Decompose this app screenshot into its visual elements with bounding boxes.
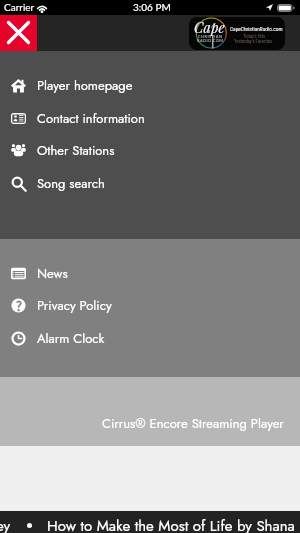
button[interactable]: Other Stations [0,134,300,166]
button[interactable]: Contact information [0,102,300,134]
button[interactable]: Alarm Clock [0,322,300,354]
staticText: 3:06 PM [133,1,171,13]
staticText: CHRISTIAN [198,34,223,39]
staticText: Song search [37,174,105,193]
button[interactable]: ? [0,289,300,321]
staticText: Player homepage [37,76,133,95]
button[interactable]: Cape Christian Radio [189,17,285,50]
staticText: CapeChristianRadio.com [230,26,283,32]
staticText: ? [16,298,22,313]
staticText: How to Make the Most of Life by Shana [47,515,295,533]
staticText: Cape [194,18,225,37]
staticText: RADIO.COM [197,38,224,43]
button[interactable]: Player homepage [0,69,300,101]
staticText: ey [0,515,11,533]
staticText: Privacy Policy [37,296,112,315]
staticText: News [37,264,68,283]
staticText: Alarm Clock [37,329,105,348]
button[interactable]: Song search [0,167,300,199]
button[interactable]: News [0,257,300,289]
button[interactable]: Close menu [0,15,37,51]
staticText: Carrier [4,1,35,13]
staticText: Yesterday's Favorites [234,39,273,44]
staticText: Contact information [37,109,145,128]
staticText: Cirrus® Encore Streaming Player [102,414,284,433]
staticText: Other Stations [37,141,115,160]
staticText: Today's Hits [243,34,265,39]
